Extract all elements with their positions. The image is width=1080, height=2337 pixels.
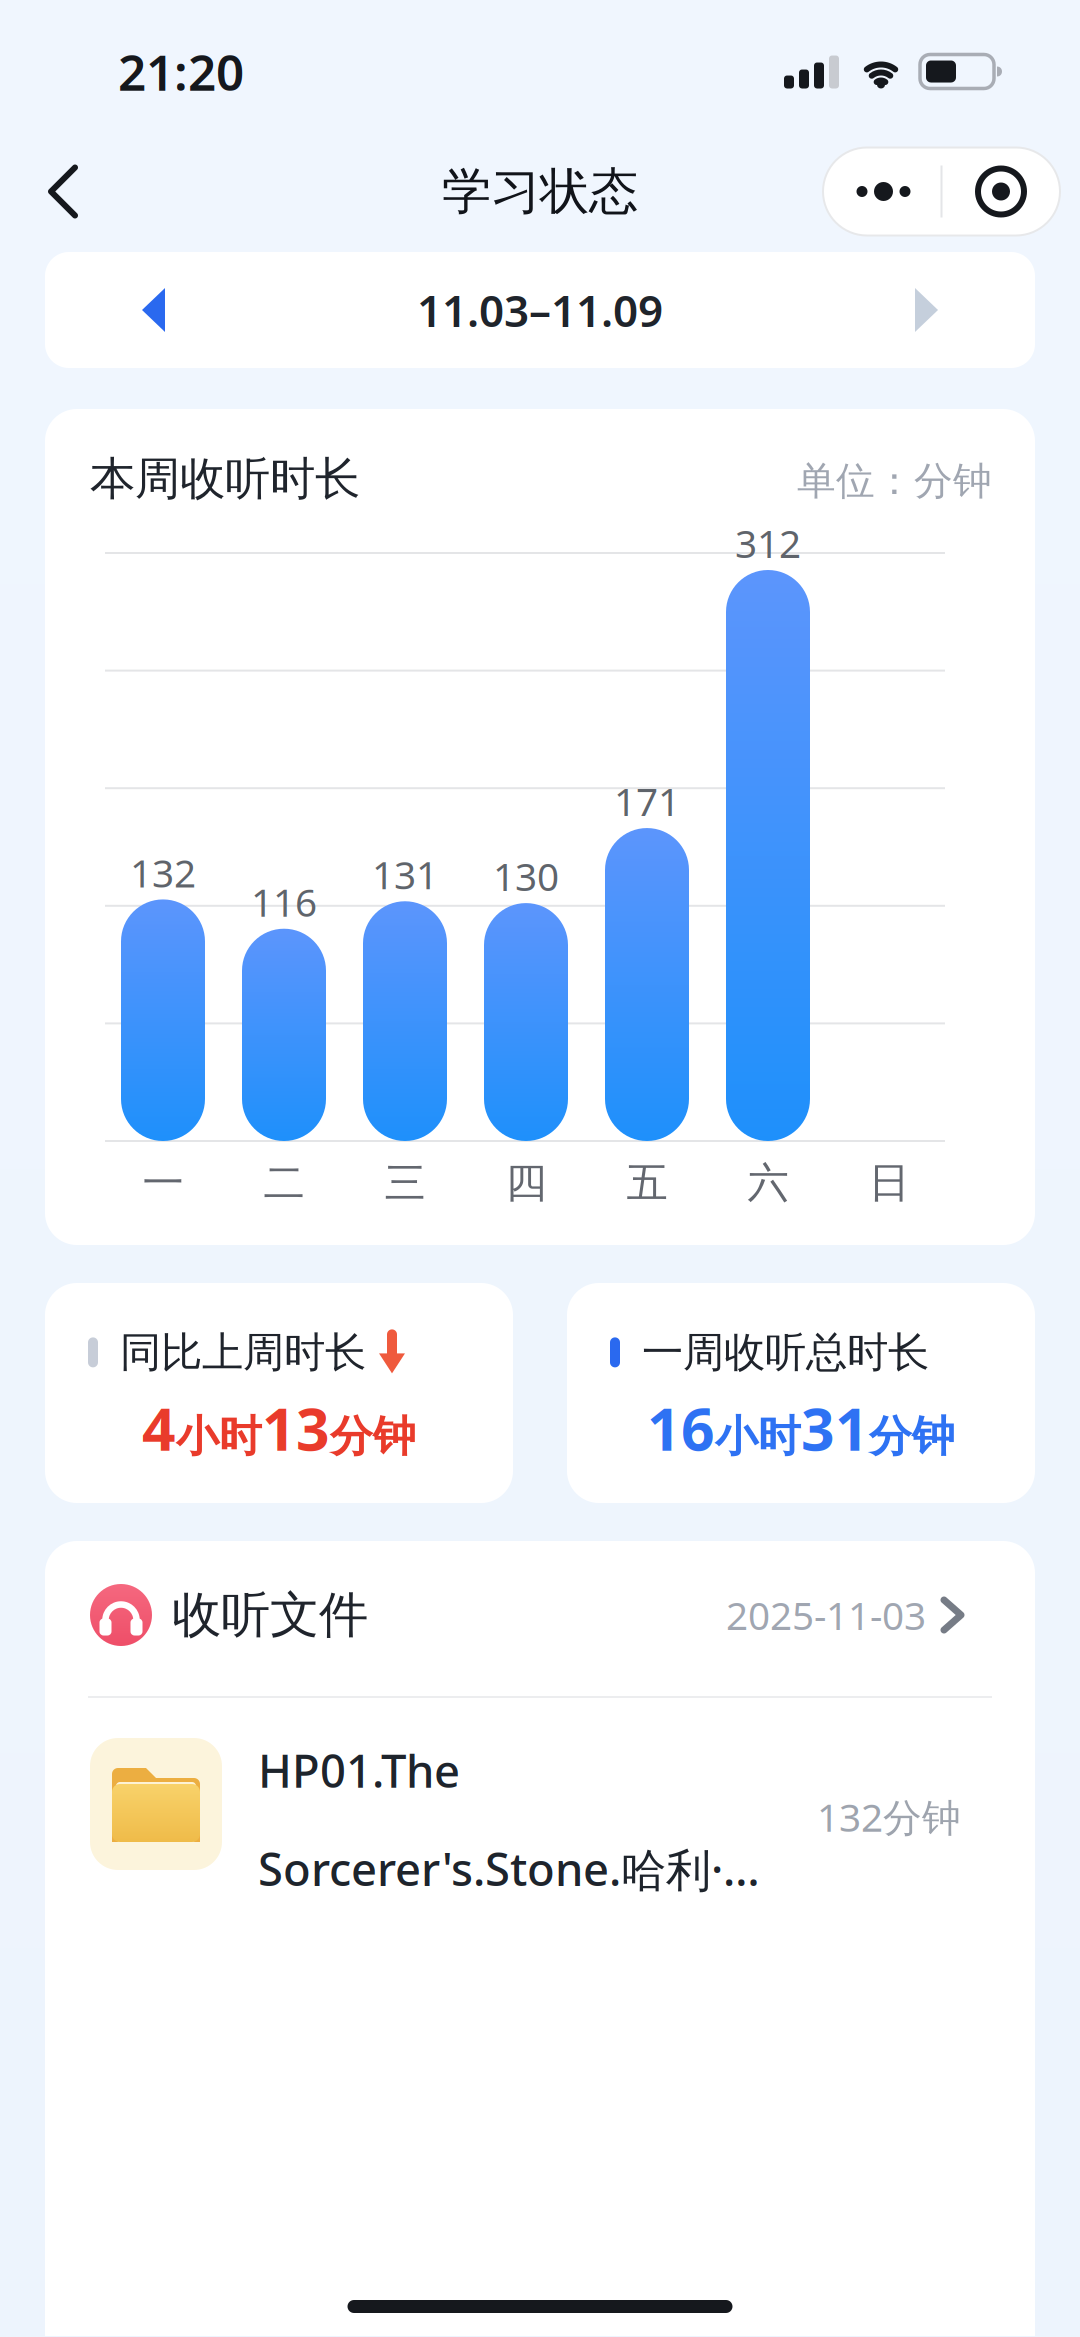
staticText: 二 — [263, 1158, 304, 1208]
staticText: 31 — [801, 1389, 869, 1467]
button[interactable]: More — [823, 147, 941, 235]
button[interactable]: HP01.The — [45, 1698, 1035, 1899]
staticText: 130 — [493, 850, 559, 902]
staticText: 312 — [735, 517, 801, 569]
staticText: 132 — [130, 847, 196, 898]
button[interactable]: Close — [941, 147, 1060, 235]
staticText: 学习状态 — [442, 161, 638, 222]
staticText: 132分钟 — [817, 1791, 961, 1842]
staticText: 分钟 — [330, 1410, 416, 1463]
staticText: 11.03–11.09 — [417, 281, 663, 339]
staticText: 16 — [647, 1389, 715, 1467]
staticText: HP01.The — [258, 1740, 460, 1800]
staticText: 六 — [747, 1158, 788, 1208]
staticText: 一周收听总时长 — [642, 1327, 929, 1378]
button[interactable]: 收听文件 — [45, 1541, 1035, 1646]
staticText: 四 — [505, 1158, 546, 1208]
staticText: 一 — [142, 1158, 183, 1208]
staticText: 4 — [142, 1389, 176, 1467]
staticText: 分钟 — [869, 1410, 955, 1463]
staticText: 三 — [384, 1158, 425, 1208]
staticText: 单位：分钟 — [797, 457, 992, 505]
staticText: 收听文件 — [172, 1585, 368, 1645]
staticText: 本周收听时长 — [90, 451, 360, 507]
staticText: 五 — [626, 1158, 667, 1208]
button[interactable]: Previous week — [45, 288, 205, 332]
staticText: 小时 — [715, 1410, 801, 1463]
staticText: 131 — [372, 849, 438, 900]
staticText: 日 — [868, 1158, 909, 1208]
staticText: 2025-11-03 — [726, 1589, 926, 1641]
staticText: Sorcerer's.Stone.哈利·… — [258, 1838, 760, 1899]
staticText: 21:20 — [118, 39, 244, 104]
button[interactable]: Back — [0, 165, 78, 217]
button[interactable]: Next week — [875, 288, 1035, 332]
staticText: 171 — [614, 775, 680, 827]
staticText: 116 — [251, 876, 317, 927]
staticText: 同比上周时长 — [120, 1327, 366, 1378]
staticText: 小时 — [176, 1410, 262, 1463]
staticText: 13 — [262, 1389, 330, 1467]
